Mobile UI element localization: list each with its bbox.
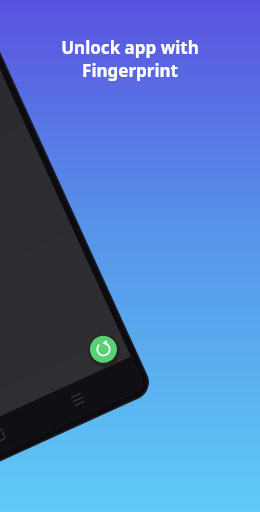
button[interactable]: Refresh — [86, 352, 114, 380]
staticText: Fingerprint — [82, 59, 178, 82]
staticText: Unlock app with — [61, 36, 199, 59]
